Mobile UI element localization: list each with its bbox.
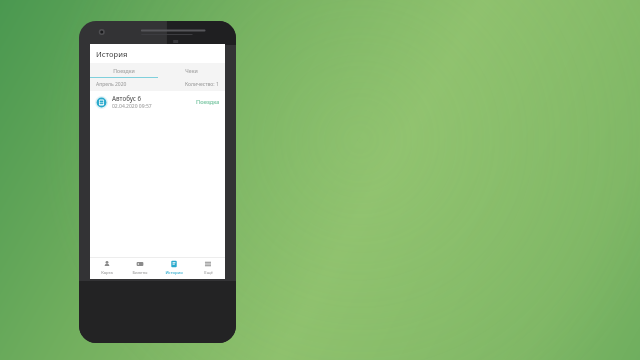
button[interactable]: Чеки	[157, 63, 225, 78]
button[interactable]: История	[157, 257, 191, 279]
staticText: Поездка	[196, 98, 220, 106]
staticText: Ещё	[204, 270, 213, 276]
button[interactable]: Поездки	[90, 63, 157, 78]
staticText: История	[165, 270, 183, 276]
staticText: Апрель 2020	[96, 81, 127, 88]
button[interactable]: Билеты	[123, 257, 157, 279]
staticText: 02.04.2020 09:57	[112, 103, 152, 110]
staticText: Поездки	[113, 67, 135, 74]
button[interactable]: Ещё	[191, 257, 225, 279]
button[interactable]: Карта	[90, 257, 123, 279]
staticText: Автобус 6	[112, 94, 142, 102]
staticText: Чеки	[185, 67, 198, 74]
staticText: Билеты	[132, 270, 148, 276]
staticText: Количество: 1	[185, 81, 219, 88]
staticText: История	[96, 49, 128, 59]
button[interactable]: Автобус 6	[90, 91, 225, 113]
staticText: Карта	[101, 270, 113, 276]
